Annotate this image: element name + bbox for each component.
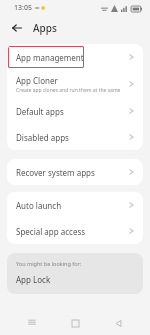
button[interactable]: Back bbox=[8, 19, 26, 37]
staticText: App Lock bbox=[16, 274, 51, 285]
button[interactable]: App Cloner bbox=[7, 70, 143, 98]
staticText: Default apps bbox=[16, 106, 64, 117]
staticText: App Cloner bbox=[16, 75, 58, 86]
staticText: Special app access bbox=[16, 226, 86, 237]
button[interactable]: Special app access bbox=[7, 218, 143, 244]
staticText: Auto launch bbox=[16, 200, 62, 211]
staticText: Recover system apps bbox=[16, 167, 95, 178]
button[interactable]: You might be looking for: bbox=[7, 253, 143, 294]
staticText: Create app clones and run them at the sa… bbox=[16, 87, 125, 94]
button[interactable]: Auto launch bbox=[7, 192, 143, 218]
staticText: Disabled apps bbox=[16, 132, 69, 143]
button[interactable]: Home bbox=[64, 312, 86, 334]
staticText: App management bbox=[16, 52, 84, 63]
button[interactable]: Back bbox=[107, 312, 129, 334]
button[interactable]: Recover system apps bbox=[7, 159, 143, 185]
staticText: Apps bbox=[33, 21, 57, 35]
button[interactable]: App management bbox=[7, 44, 143, 70]
button[interactable]: Disabled apps bbox=[7, 124, 143, 150]
button[interactable]: Recent apps bbox=[21, 312, 43, 334]
staticText: 13:05 bbox=[14, 3, 32, 13]
staticText: You might be looking for: bbox=[16, 260, 82, 267]
button[interactable]: Default apps bbox=[7, 98, 143, 124]
